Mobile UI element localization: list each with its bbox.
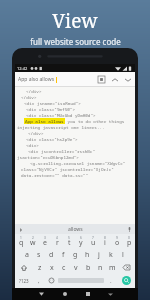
button[interactable]: n — [94, 261, 106, 274]
staticText: data-restore="" data-ss="" — [21, 172, 89, 178]
button[interactable]: x — [46, 261, 58, 274]
button[interactable]: h — [81, 248, 93, 261]
staticText: w — [30, 238, 36, 248]
staticText: 8 — [104, 236, 106, 240]
staticText: <div class="MUxGbd yDmH0d"> — [26, 112, 96, 118]
button[interactable]: b — [82, 261, 94, 274]
button[interactable]: Back — [29, 288, 53, 300]
button[interactable]: c — [58, 261, 70, 274]
staticText: e — [43, 238, 47, 248]
button[interactable]: Next — [123, 75, 132, 84]
button[interactable]: d — [45, 248, 57, 261]
button[interactable]: Emoji — [45, 274, 57, 287]
button[interactable]: Previous — [110, 75, 119, 84]
button[interactable]: m — [106, 261, 118, 274]
staticText: f — [62, 250, 65, 260]
button[interactable]: Home — [53, 288, 76, 300]
button[interactable]: 0 — [123, 235, 135, 248]
staticText: ?123 — [19, 278, 29, 284]
button[interactable]: Recents — [76, 288, 99, 300]
staticText: <div class="9mf50"> — [26, 106, 75, 112]
staticText: d — [49, 250, 54, 260]
button[interactable]: 4 — [51, 235, 63, 248]
staticText: g — [73, 250, 78, 260]
staticText: k — [109, 250, 113, 260]
button[interactable]: 9 — [111, 235, 123, 248]
staticText: z — [38, 263, 42, 273]
staticText: jsaction="rcuD6bnp12md"> — [17, 154, 79, 160]
button[interactable]: 5 — [63, 235, 75, 248]
staticText: full website source code — [30, 36, 121, 47]
staticText: m — [109, 263, 116, 273]
staticText: 3 — [44, 236, 46, 240]
staticText: u — [91, 238, 96, 248]
button[interactable]: ?123 — [15, 274, 33, 287]
staticText: h — [85, 250, 90, 260]
staticText: . — [110, 277, 112, 285]
button[interactable]: 7 — [87, 235, 99, 248]
button[interactable]: k — [105, 248, 117, 261]
staticText: App also allows — [25, 118, 64, 124]
button[interactable]: . — [105, 274, 117, 287]
button[interactable]: allows — [24, 226, 126, 233]
staticText: t — [68, 238, 71, 248]
button[interactable]: Screenshot — [97, 75, 106, 84]
button[interactable]: g — [69, 248, 81, 261]
button[interactable]: , — [33, 274, 45, 287]
button[interactable]: f — [57, 248, 69, 261]
staticText: q — [19, 238, 24, 248]
button[interactable]: Voice input — [126, 226, 133, 233]
button[interactable]: a — [21, 248, 33, 261]
button[interactable]: z — [33, 261, 46, 274]
staticText: , — [38, 277, 40, 285]
staticText: class="NjVVCr" jscontroller="XjOrJc" — [21, 166, 114, 172]
staticText: 6 — [80, 236, 82, 240]
staticText: </div> — [21, 94, 37, 100]
staticText: <div jscontroller="rsshBc" — [28, 148, 96, 154]
staticText: App also allows — [18, 76, 55, 83]
staticText: p — [127, 238, 132, 248]
button[interactable]: More suggestions — [17, 226, 24, 233]
button[interactable]: Shift — [15, 261, 33, 274]
button[interactable]: 8 — [99, 235, 111, 248]
staticText: r — [56, 238, 59, 248]
staticText: <div class="hs2p9e"> — [26, 136, 78, 142]
staticText: a — [25, 250, 29, 260]
button[interactable]: s — [33, 248, 45, 261]
staticText: s — [37, 250, 41, 260]
button[interactable]: l — [117, 248, 129, 261]
staticText: allows — [68, 226, 83, 233]
staticText: 5 — [68, 236, 70, 240]
staticText: 0 — [128, 236, 130, 240]
staticText: c — [62, 263, 66, 273]
staticText: injecting javascript one liners... — [17, 124, 105, 130]
staticText: View — [52, 8, 98, 34]
staticText: 7 — [92, 236, 94, 240]
staticText: 2 — [32, 236, 34, 240]
button[interactable]: 2 — [27, 235, 39, 248]
staticText: v — [74, 263, 78, 273]
staticText: 4 — [56, 236, 58, 240]
button[interactable]: 6 — [75, 235, 87, 248]
button[interactable]: 3 — [39, 235, 51, 248]
button[interactable]: Search — [122, 276, 131, 285]
button[interactable]: v — [70, 261, 82, 274]
button[interactable]: App also allows — [18, 76, 97, 83]
staticText: x — [50, 263, 54, 273]
button[interactable]: j — [93, 248, 105, 261]
staticText: <g-scrolling-carousel jsname="XWgvCc" — [30, 160, 126, 166]
staticText: 12:42 — [17, 66, 28, 71]
staticText: 9 — [116, 236, 118, 240]
staticText: <div> — [26, 142, 39, 148]
staticText: i — [104, 238, 106, 248]
staticText: b — [86, 263, 91, 273]
button[interactable]: Backspace — [118, 261, 135, 274]
button[interactable]: Hide keyboard — [99, 288, 122, 300]
staticText: 1 — [20, 236, 22, 240]
staticText: o — [115, 238, 120, 248]
staticText: </div> — [26, 88, 42, 94]
staticText: you to do other things like — [65, 118, 133, 124]
button[interactable]: 1 — [15, 235, 27, 248]
staticText: j — [98, 250, 100, 260]
